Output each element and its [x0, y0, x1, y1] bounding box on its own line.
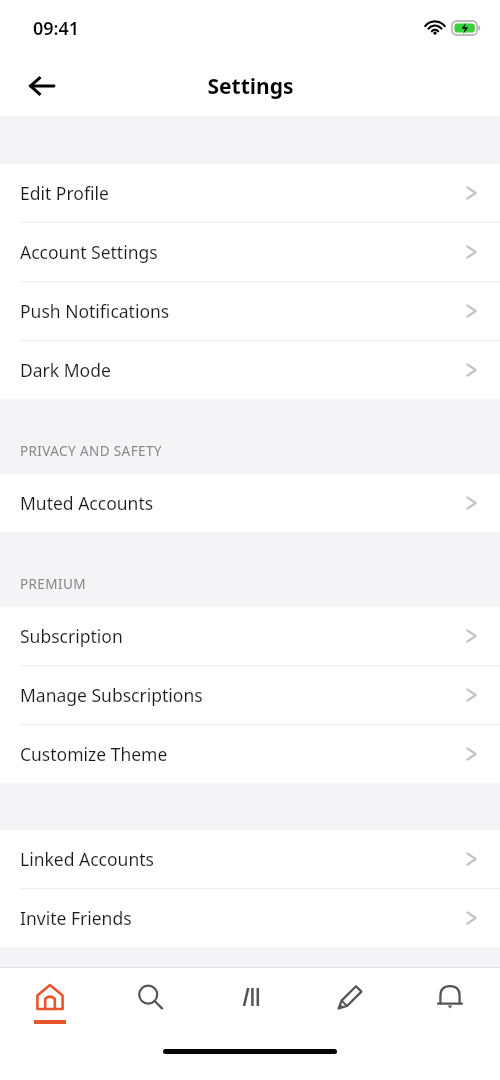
- button[interactable]: Compose: [300, 968, 400, 1038]
- button[interactable]: Search: [100, 968, 200, 1038]
- button[interactable]: Invite Friends: [0, 889, 500, 947]
- button[interactable]: Notifications: [400, 968, 500, 1038]
- staticText: Edit Profile: [20, 181, 465, 205]
- staticText: Push Notifications: [20, 299, 465, 323]
- staticText: Linked Accounts: [20, 847, 465, 871]
- button[interactable]: Customize Theme: [0, 725, 500, 783]
- button[interactable]: Edit Profile: [0, 164, 500, 222]
- staticText: Account Settings: [20, 240, 465, 264]
- button[interactable]: Linked Accounts: [0, 830, 500, 888]
- button[interactable]: Dark Mode: [0, 341, 500, 399]
- staticText: Settings: [207, 72, 294, 101]
- button[interactable]: Home: [0, 968, 100, 1038]
- button[interactable]: Back: [18, 62, 66, 110]
- button[interactable]: Account Settings: [0, 223, 500, 281]
- staticText: Customize Theme: [20, 742, 465, 766]
- staticText: Subscription: [20, 624, 465, 648]
- staticText: Invite Friends: [20, 906, 465, 930]
- button[interactable]: Push Notifications: [0, 282, 500, 340]
- staticText: 09:41: [33, 16, 80, 41]
- staticText: PREMIUM: [20, 575, 86, 593]
- staticText: Muted Accounts: [20, 491, 465, 515]
- button[interactable]: Subscription: [0, 607, 500, 665]
- button[interactable]: Library: [200, 968, 300, 1038]
- button[interactable]: Manage Subscriptions: [0, 666, 500, 724]
- button[interactable]: Muted Accounts: [0, 474, 500, 532]
- staticText: Dark Mode: [20, 358, 465, 382]
- staticText: Manage Subscriptions: [20, 683, 465, 707]
- staticText: PRIVACY AND SAFETY: [20, 442, 162, 460]
